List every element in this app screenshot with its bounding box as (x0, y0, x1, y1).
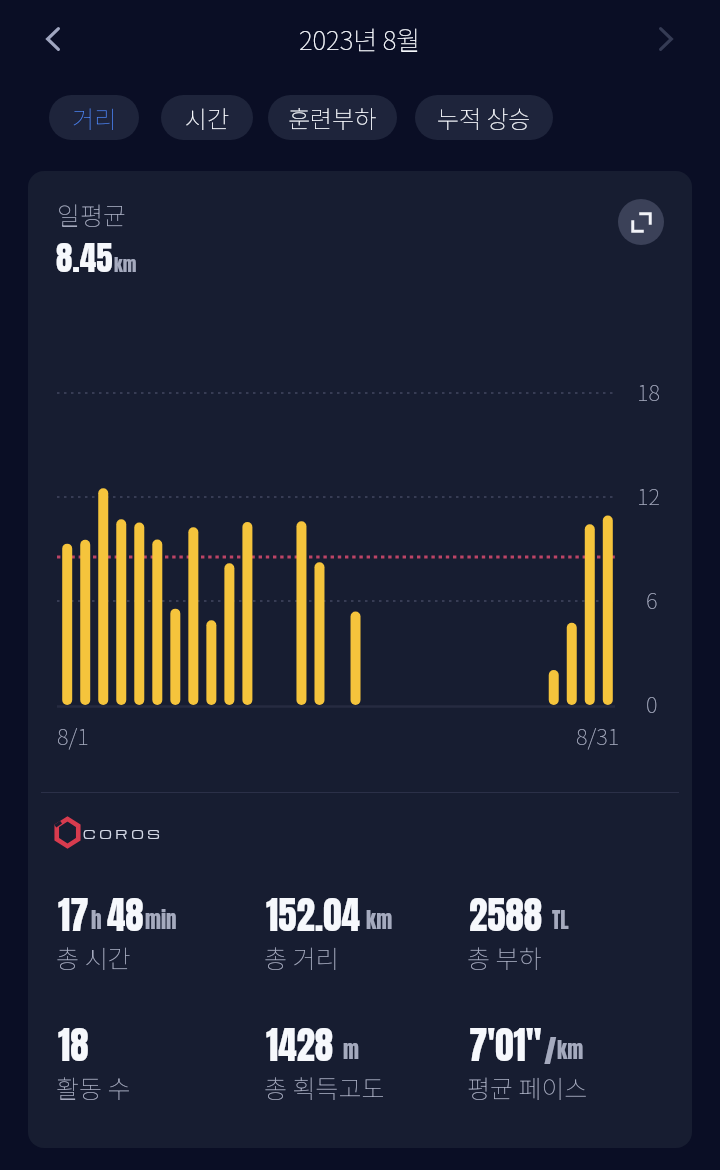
staticText: 18 (637, 375, 660, 407)
staticText: 평균 페이스 (467, 1069, 588, 1105)
staticText: 거리 (72, 100, 117, 135)
staticText: 총 획득고도 (264, 1069, 385, 1105)
button[interactable]: Next month (638, 11, 694, 67)
staticText: 활동 수 (56, 1069, 131, 1105)
staticText: COROS (83, 825, 164, 842)
staticText: 12 (637, 479, 660, 511)
staticText: 8.45 (56, 233, 113, 283)
staticText: 일평균 (57, 196, 127, 232)
staticText: 총 시간 (56, 939, 131, 975)
button[interactable]: Previous month (25, 11, 81, 67)
staticText: 1428 (266, 1017, 334, 1073)
staticText: 총 부하 (467, 939, 542, 975)
button[interactable]: Expand chart (618, 199, 664, 245)
staticText: / (544, 1028, 557, 1075)
staticText: 2588 (469, 887, 543, 943)
staticText: 0 (646, 687, 658, 719)
button[interactable]: 누적 상승 (415, 95, 553, 140)
staticText: 훈련부하 (288, 100, 377, 135)
staticText: km (557, 1034, 584, 1066)
staticText: 18 (58, 1017, 89, 1073)
staticText: 8/31 (576, 719, 620, 751)
staticText: 2023년 8월 (299, 20, 421, 58)
staticText: 17 (58, 887, 89, 943)
staticText: 152.04 (266, 887, 360, 943)
button[interactable]: 훈련부하 (268, 95, 397, 140)
staticText: TL (552, 904, 569, 936)
staticText: 총 거리 (264, 939, 339, 975)
staticText: km (366, 904, 393, 936)
staticText: h (91, 904, 102, 936)
button[interactable]: 시간 (161, 95, 253, 140)
staticText: km (114, 251, 137, 278)
staticText: 48 (107, 887, 144, 943)
staticText: 8/1 (57, 719, 89, 751)
staticText: 6 (646, 583, 658, 615)
staticText: 시간 (185, 100, 230, 135)
staticText: min (145, 904, 177, 936)
button[interactable]: 거리 (49, 95, 139, 140)
staticText: 누적 상승 (437, 100, 531, 135)
staticText: m (343, 1034, 359, 1066)
staticText: 7'01" (469, 1017, 542, 1073)
